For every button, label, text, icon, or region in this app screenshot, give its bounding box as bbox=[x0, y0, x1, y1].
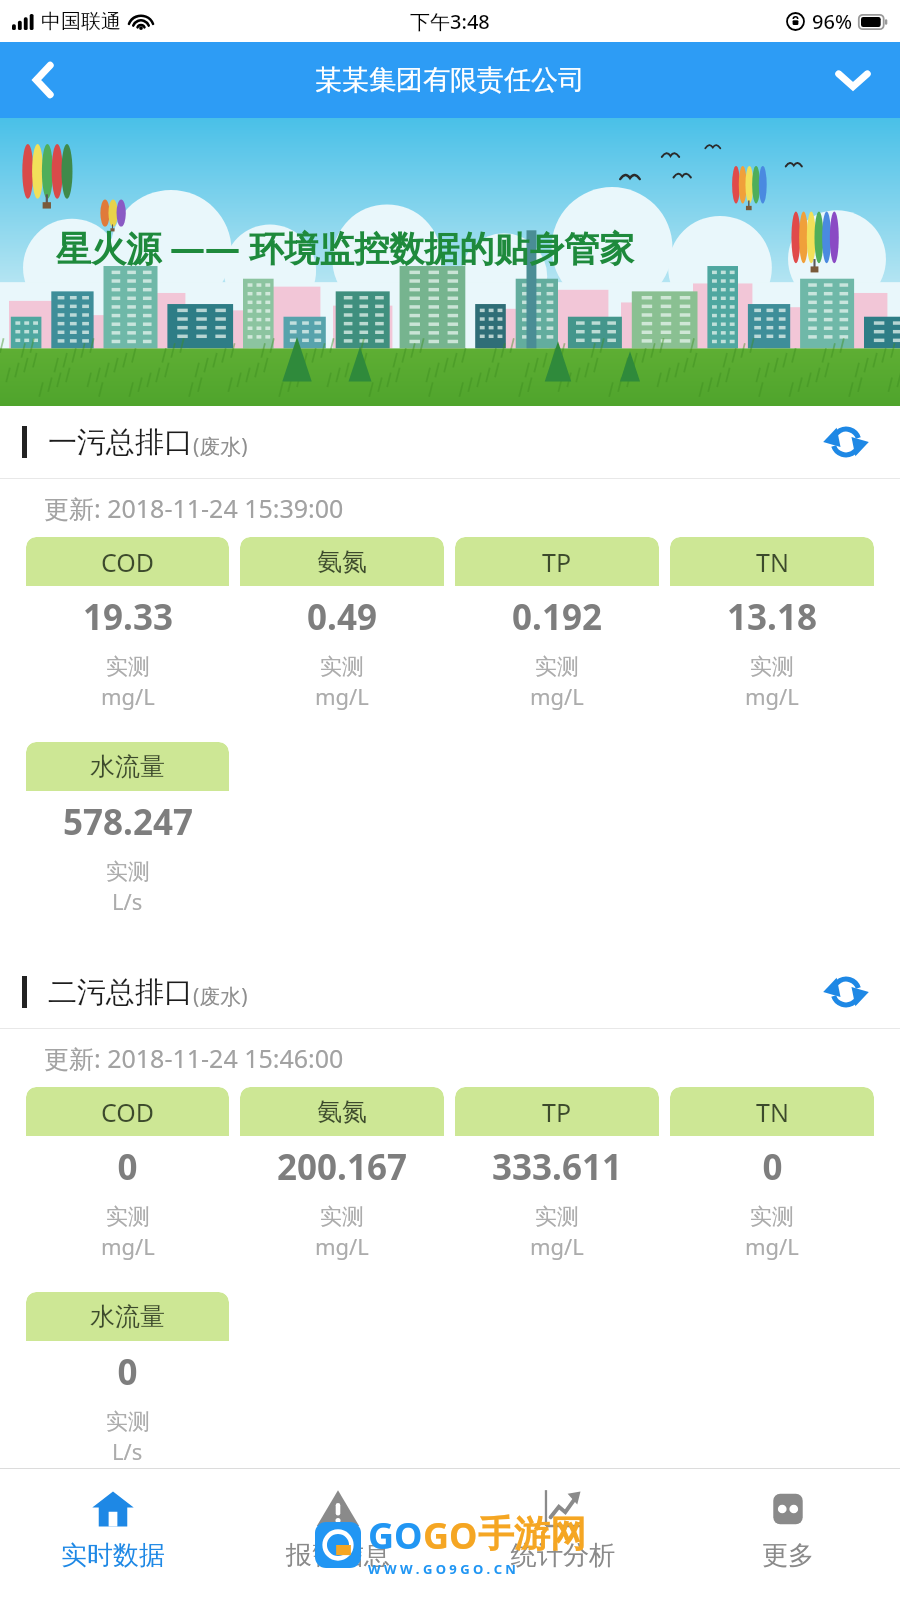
button[interactable]: 统计分析 bbox=[450, 1469, 675, 1600]
staticText: mg/L bbox=[745, 1231, 799, 1261]
staticText: 0 bbox=[117, 1143, 138, 1191]
button[interactable]: TN bbox=[670, 1087, 874, 1281]
staticText: mg/L bbox=[315, 1231, 369, 1261]
staticText: TP bbox=[542, 1095, 572, 1129]
staticText: mg/L bbox=[745, 681, 799, 711]
staticText: 实测 bbox=[106, 858, 150, 886]
staticText: 实测 bbox=[320, 1203, 364, 1231]
button[interactable]: 水流量 bbox=[26, 742, 229, 936]
staticText: 手游网 bbox=[478, 1511, 586, 1556]
staticText: mg/L bbox=[530, 681, 584, 711]
staticText: COD bbox=[101, 1095, 155, 1129]
staticText: 19.33 bbox=[83, 593, 173, 641]
staticText: 0 bbox=[762, 1143, 783, 1191]
staticText: L/s bbox=[112, 1436, 143, 1466]
staticText: 0.192 bbox=[512, 593, 602, 641]
staticText: (废水) bbox=[193, 432, 248, 461]
staticText: (废水) bbox=[193, 982, 248, 1011]
staticText: 实测 bbox=[750, 1203, 794, 1231]
staticText: 实测 bbox=[320, 653, 364, 681]
button[interactable]: 刷新 bbox=[818, 964, 874, 1020]
button[interactable]: 水流量 bbox=[26, 1292, 229, 1468]
staticText: 实测 bbox=[535, 653, 579, 681]
staticText: 水流量 bbox=[90, 1301, 165, 1332]
staticText: 统计分析 bbox=[511, 1539, 615, 1572]
button[interactable]: 报警信息 bbox=[225, 1469, 450, 1600]
staticText: 实时数据 bbox=[61, 1539, 165, 1572]
staticText: 实测 bbox=[535, 1203, 579, 1231]
staticText: 0 bbox=[117, 1348, 138, 1396]
staticText: 下午3:48 bbox=[410, 8, 490, 35]
staticText: GO bbox=[368, 1511, 423, 1560]
button[interactable]: TP bbox=[455, 537, 659, 731]
staticText: 星火源 —— 环境监控数据的贴身管家 bbox=[56, 224, 635, 272]
staticText: 200.167 bbox=[277, 1143, 407, 1191]
staticText: 0.49 bbox=[307, 593, 377, 641]
staticText: 更多 bbox=[762, 1539, 814, 1572]
button[interactable]: TP bbox=[455, 1087, 659, 1281]
button[interactable]: 二污总排口 bbox=[0, 956, 900, 1028]
button[interactable]: TN bbox=[670, 537, 874, 731]
staticText: W W W . G O 9 G O . C N bbox=[368, 1560, 516, 1578]
staticText: 氨氮 bbox=[317, 546, 367, 577]
staticText: 报警信息 bbox=[286, 1539, 390, 1572]
staticText: TN bbox=[756, 545, 789, 579]
button[interactable]: 刷新 bbox=[818, 414, 874, 470]
button[interactable]: 一污总排口 bbox=[0, 406, 900, 478]
staticText: 13.18 bbox=[727, 593, 817, 641]
staticText: L/s bbox=[112, 886, 143, 916]
staticText: 氨氮 bbox=[317, 1096, 367, 1127]
staticText: 96% bbox=[812, 8, 852, 35]
button[interactable]: 氨氮 bbox=[240, 1087, 444, 1281]
staticText: 实测 bbox=[106, 1203, 150, 1231]
staticText: 一污总排口 bbox=[48, 424, 193, 461]
staticText: 333.611 bbox=[492, 1143, 622, 1191]
staticText: mg/L bbox=[315, 681, 369, 711]
staticText: GO bbox=[423, 1511, 478, 1560]
button[interactable]: 氨氮 bbox=[240, 537, 444, 731]
button[interactable]: COD bbox=[26, 537, 229, 731]
staticText: 更新: 2018-11-24 15:46:00 bbox=[44, 1041, 344, 1075]
staticText: TN bbox=[756, 1095, 789, 1129]
staticText: mg/L bbox=[101, 681, 155, 711]
staticText: 实测 bbox=[106, 653, 150, 681]
button[interactable]: 更多 bbox=[675, 1469, 900, 1600]
staticText: 更新: 2018-11-24 15:39:00 bbox=[44, 491, 344, 525]
staticText: 实测 bbox=[106, 1408, 150, 1436]
staticText: 中国联通 bbox=[41, 9, 121, 34]
staticText: TP bbox=[542, 545, 572, 579]
staticText: 实测 bbox=[750, 653, 794, 681]
button[interactable]: 返回 bbox=[10, 47, 76, 113]
staticText: COD bbox=[101, 545, 155, 579]
staticText: 578.247 bbox=[63, 798, 193, 846]
button[interactable]: 实时数据 bbox=[0, 1469, 225, 1600]
staticText: 水流量 bbox=[90, 751, 165, 782]
staticText: mg/L bbox=[530, 1231, 584, 1261]
staticText: mg/L bbox=[101, 1231, 155, 1261]
button[interactable]: COD bbox=[26, 1087, 229, 1281]
staticText: 某某集团有限责任公司 bbox=[315, 63, 585, 97]
staticText: 二污总排口 bbox=[48, 974, 193, 1011]
button[interactable]: 展开公司列表 bbox=[820, 47, 886, 113]
